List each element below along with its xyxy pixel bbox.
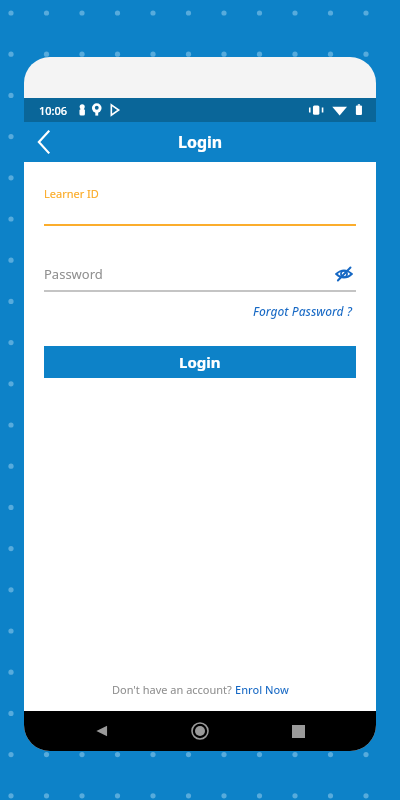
staticText: Forgot Password ? — [253, 303, 352, 319]
button[interactable]: Password — [44, 262, 356, 286]
button[interactable]: Home — [180, 711, 220, 751]
button[interactable]: Login — [44, 346, 356, 378]
staticText: Login — [178, 131, 223, 153]
button[interactable]: Back — [24, 122, 64, 162]
button[interactable]: Learner ID — [44, 186, 356, 224]
staticText: Don't have an account? — [112, 682, 235, 697]
staticText: Password — [44, 265, 103, 283]
staticText: Enrol Now — [235, 682, 289, 697]
button[interactable]: Recent apps — [278, 711, 318, 751]
button[interactable]: Forgot Password ? — [249, 300, 356, 322]
staticText: Learner ID — [44, 186, 99, 201]
button[interactable]: Back — [82, 711, 122, 751]
staticText: Login — [179, 352, 221, 372]
button[interactable]: Show password — [332, 262, 356, 286]
staticText: 10:06 — [39, 103, 68, 118]
button[interactable]: Enrol Now — [235, 682, 289, 697]
